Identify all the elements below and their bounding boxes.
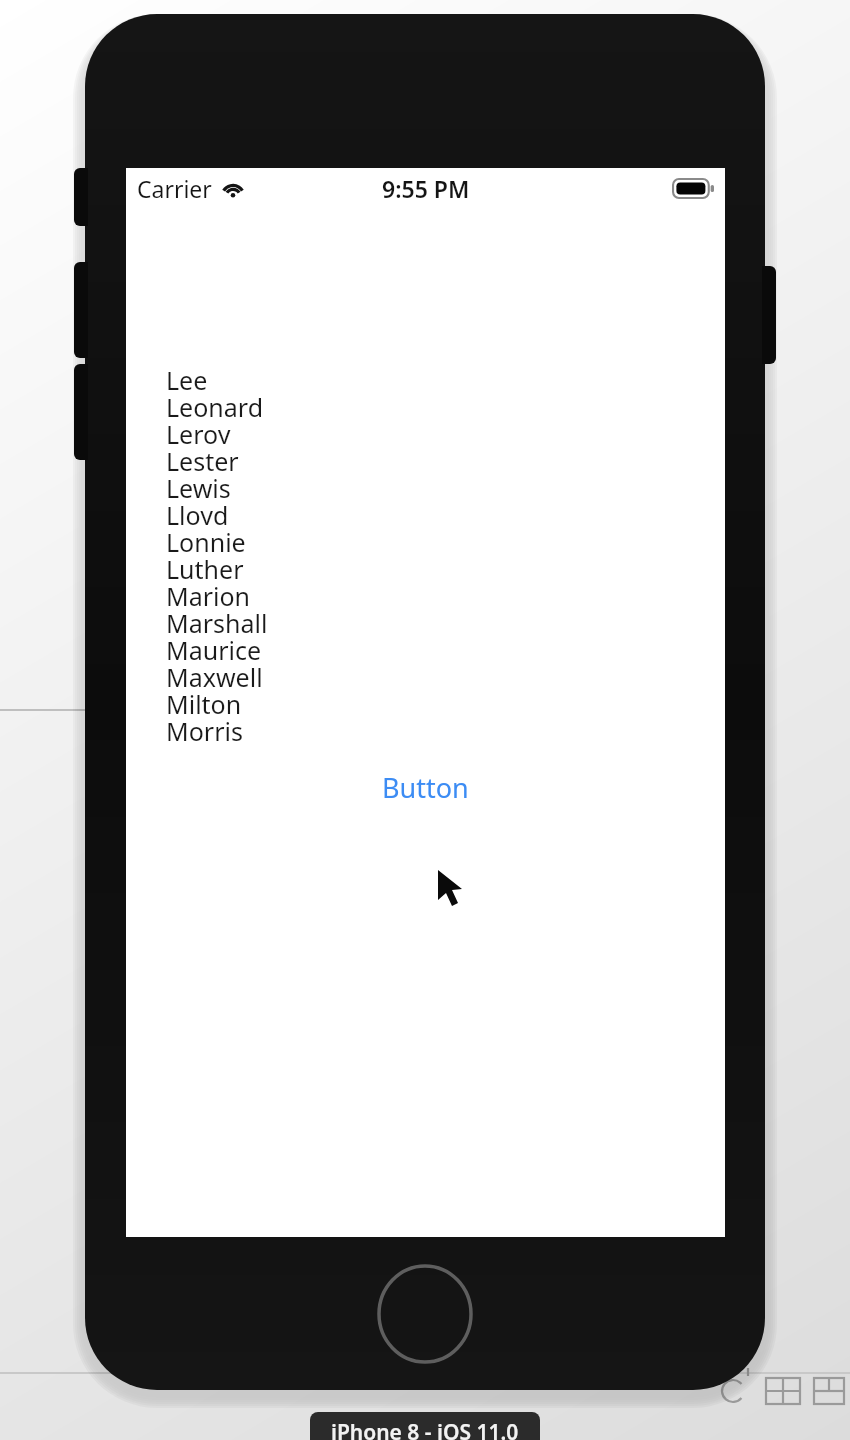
staticText: Lonnie bbox=[166, 525, 246, 552]
other: Home bbox=[377, 1266, 473, 1362]
staticText: Maurice bbox=[166, 633, 262, 660]
button[interactable]: Marshall bbox=[166, 606, 268, 633]
button[interactable]: Luther bbox=[166, 552, 244, 579]
staticText: Marshall bbox=[166, 606, 268, 633]
other: Battery full bbox=[672, 178, 714, 199]
staticText: Morris bbox=[166, 714, 243, 741]
button[interactable]: iPhone 8 - iOS 11.0 bbox=[310, 1412, 540, 1440]
other: Wi-Fi bbox=[221, 179, 245, 198]
staticText: Leroy bbox=[166, 417, 231, 444]
staticText: Marion bbox=[166, 579, 251, 606]
button[interactable]: Leonard bbox=[166, 390, 264, 417]
button[interactable]: Maurice bbox=[166, 633, 262, 660]
button[interactable]: Lloyd bbox=[166, 498, 229, 525]
button[interactable]: Marion bbox=[166, 579, 251, 606]
button[interactable]: Lester bbox=[166, 444, 239, 471]
button[interactable]: Morris bbox=[166, 714, 243, 741]
button[interactable]: Milton bbox=[166, 687, 242, 714]
staticText: Lewis bbox=[166, 471, 231, 498]
button[interactable]: Maxwell bbox=[166, 660, 263, 687]
button[interactable]: Lee bbox=[166, 371, 208, 390]
button[interactable]: Leroy bbox=[166, 417, 231, 444]
staticText: Leonard bbox=[166, 390, 264, 417]
staticText: Lester bbox=[166, 444, 239, 471]
staticText: 9:55 PM bbox=[382, 173, 470, 204]
staticText: Maxwell bbox=[166, 660, 263, 687]
staticText: Carrier bbox=[137, 173, 212, 204]
staticText: Luther bbox=[166, 552, 244, 579]
staticText: Button bbox=[382, 769, 469, 801]
button[interactable]: Lewis bbox=[166, 471, 231, 498]
staticText: Lloyd bbox=[166, 498, 229, 525]
button[interactable]: Lonnie bbox=[166, 525, 246, 552]
staticText: Lee bbox=[166, 371, 208, 390]
button[interactable]: Button bbox=[372, 765, 479, 805]
staticText: Milton bbox=[166, 687, 242, 714]
staticText: iPhone 8 - iOS 11.0 bbox=[331, 1418, 519, 1440]
